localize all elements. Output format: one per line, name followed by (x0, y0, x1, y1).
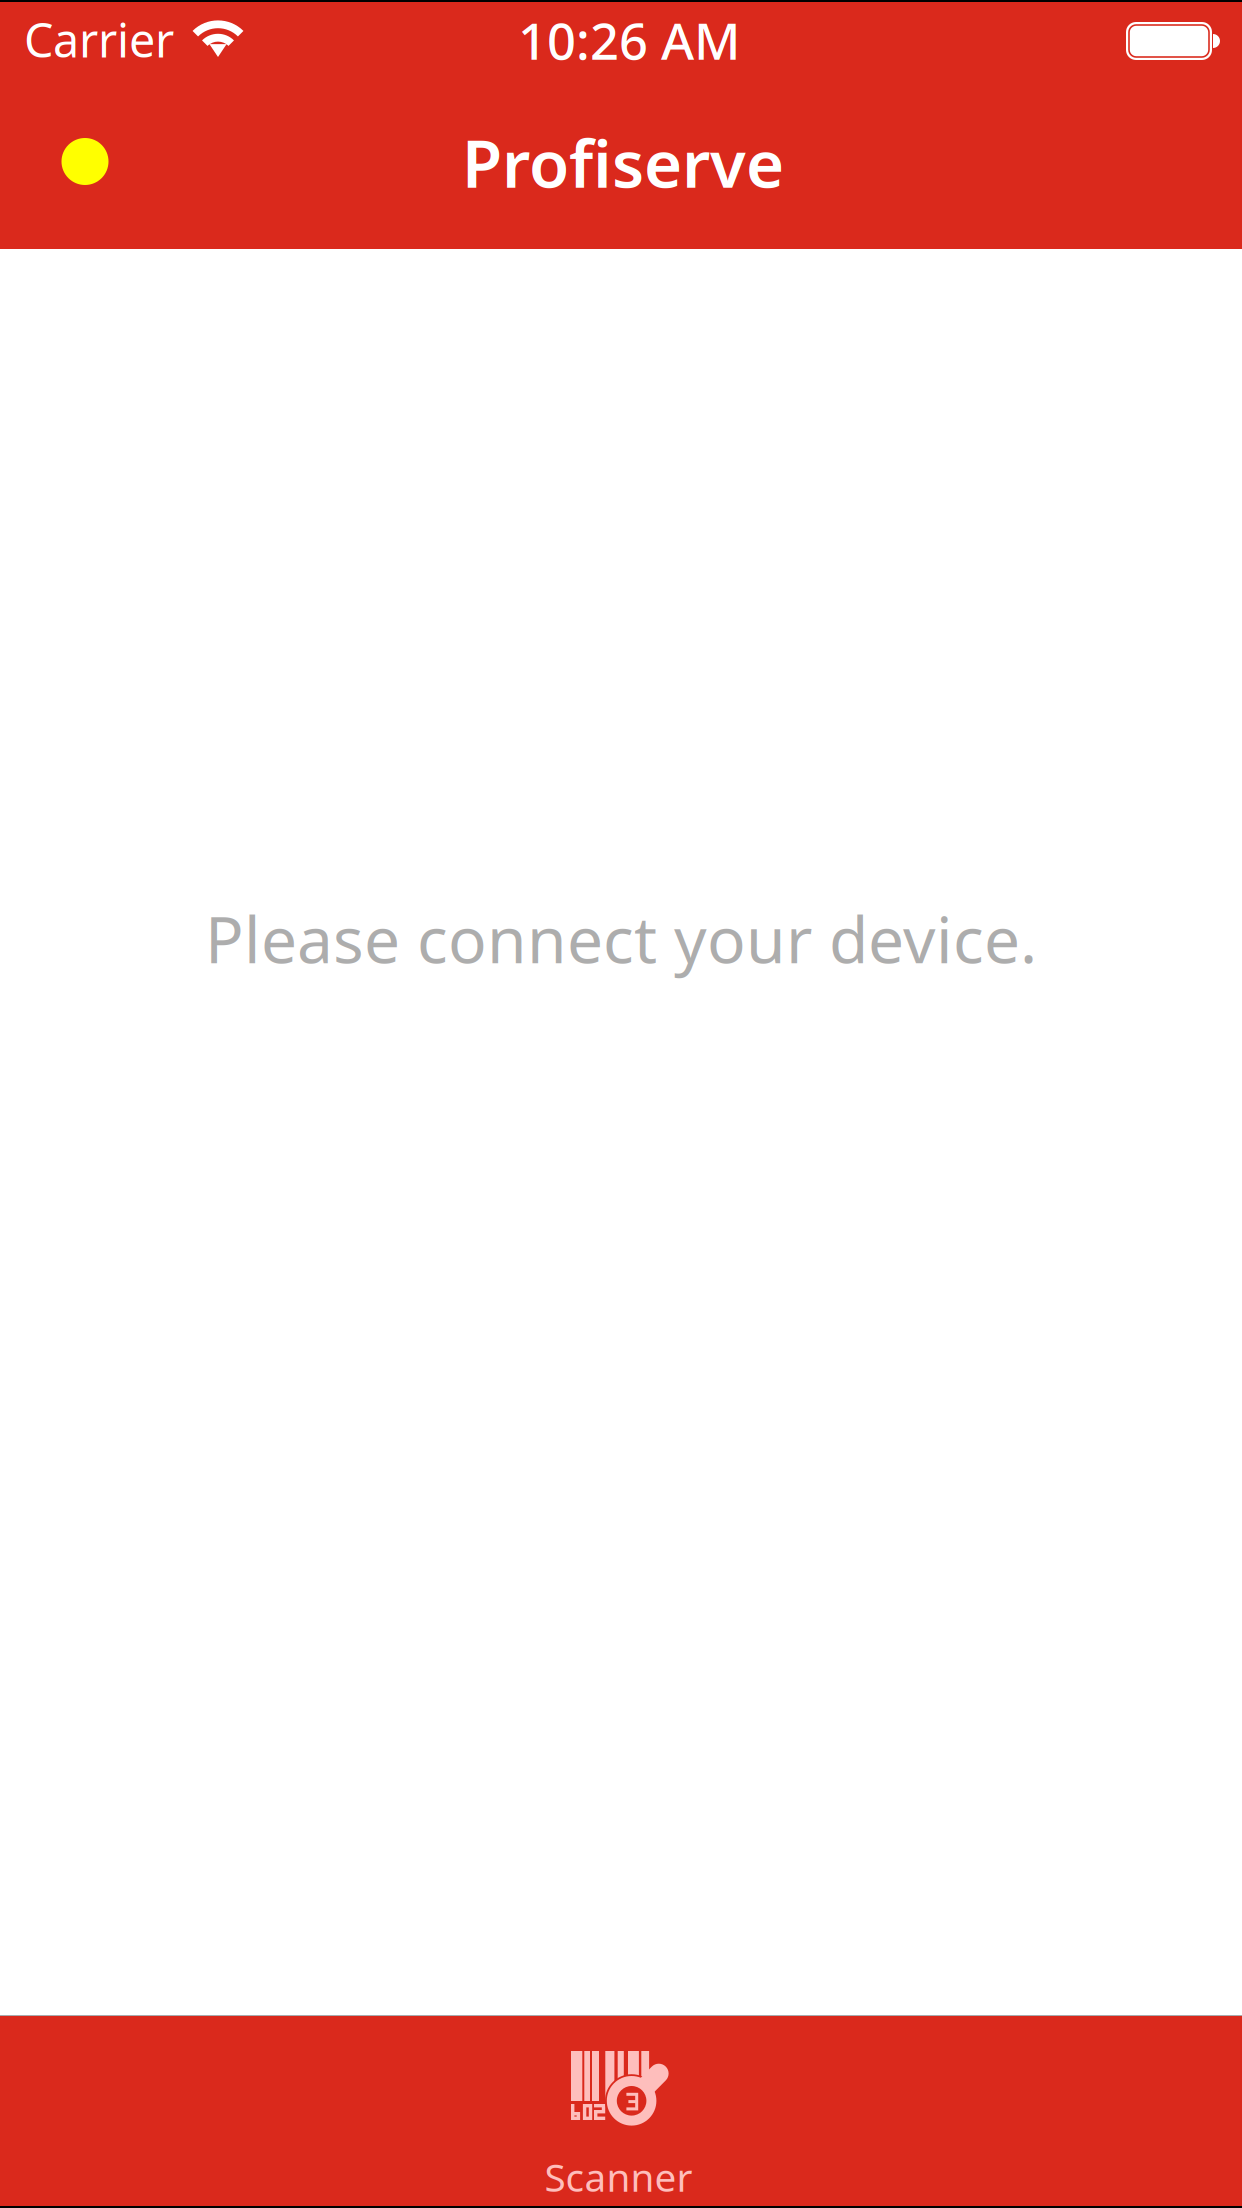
button[interactable]: Connection status (42, 118, 128, 210)
staticText: Scanner (544, 2151, 692, 2202)
staticText: 10:26 AM (518, 6, 741, 74)
staticText: Please connect your device. (205, 896, 1037, 981)
staticText: Carrier (24, 8, 174, 70)
staticText: Profiserve (462, 119, 784, 206)
button[interactable]: Scanner (0, 2016, 1242, 2206)
